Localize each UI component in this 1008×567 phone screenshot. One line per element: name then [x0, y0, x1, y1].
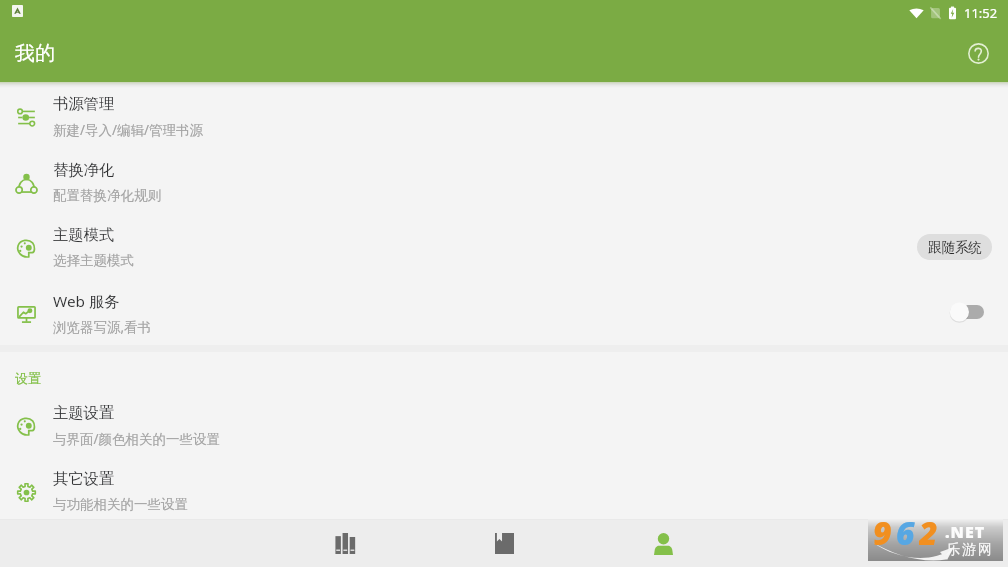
staticText: 新建/导入/编辑/管理书源: [53, 121, 204, 139]
staticText: 其它设置: [53, 469, 115, 488]
button[interactable]: 发现: [425, 520, 584, 567]
staticText: 浏览器写源,看书: [53, 318, 152, 336]
button[interactable]: Help: [958, 33, 998, 73]
staticText: 配置替换净化规则: [53, 187, 161, 204]
staticText: 设置: [15, 370, 41, 386]
button[interactable]: 替换净化: [0, 151, 1008, 217]
staticText: 跟随系统: [928, 239, 982, 256]
button[interactable]: Web 服务 toggle: [945, 296, 989, 328]
staticText: 主题设置: [53, 403, 115, 422]
staticText: Web 服务: [53, 291, 120, 312]
button[interactable]: Web 服务: [0, 282, 1008, 348]
staticText: 与界面/颜色相关的一些设置: [53, 430, 221, 448]
button[interactable]: 其它设置: [0, 460, 1008, 526]
staticText: .NET: [945, 521, 986, 543]
button[interactable]: 主题模式: [0, 216, 1008, 282]
staticText: 与功能相关的一些设置: [53, 496, 188, 513]
button[interactable]: 我的: [584, 520, 743, 567]
staticText: 11:52: [964, 4, 998, 22]
staticText: 乐游网: [945, 541, 993, 559]
staticText: 替换净化: [53, 160, 115, 179]
staticText: 书源管理: [53, 94, 115, 113]
staticText: 我的: [15, 41, 55, 66]
staticText: 主题模式: [53, 225, 115, 244]
button[interactable]: 跟随系统: [917, 234, 992, 260]
staticText: 6: [896, 511, 919, 554]
staticText: 2: [919, 511, 942, 554]
button[interactable]: 主题设置: [0, 394, 1008, 460]
button[interactable]: 书源管理: [0, 85, 1008, 151]
button[interactable]: 书架: [266, 520, 425, 567]
staticText: 9: [873, 511, 896, 554]
staticText: 选择主题模式: [53, 252, 134, 269]
